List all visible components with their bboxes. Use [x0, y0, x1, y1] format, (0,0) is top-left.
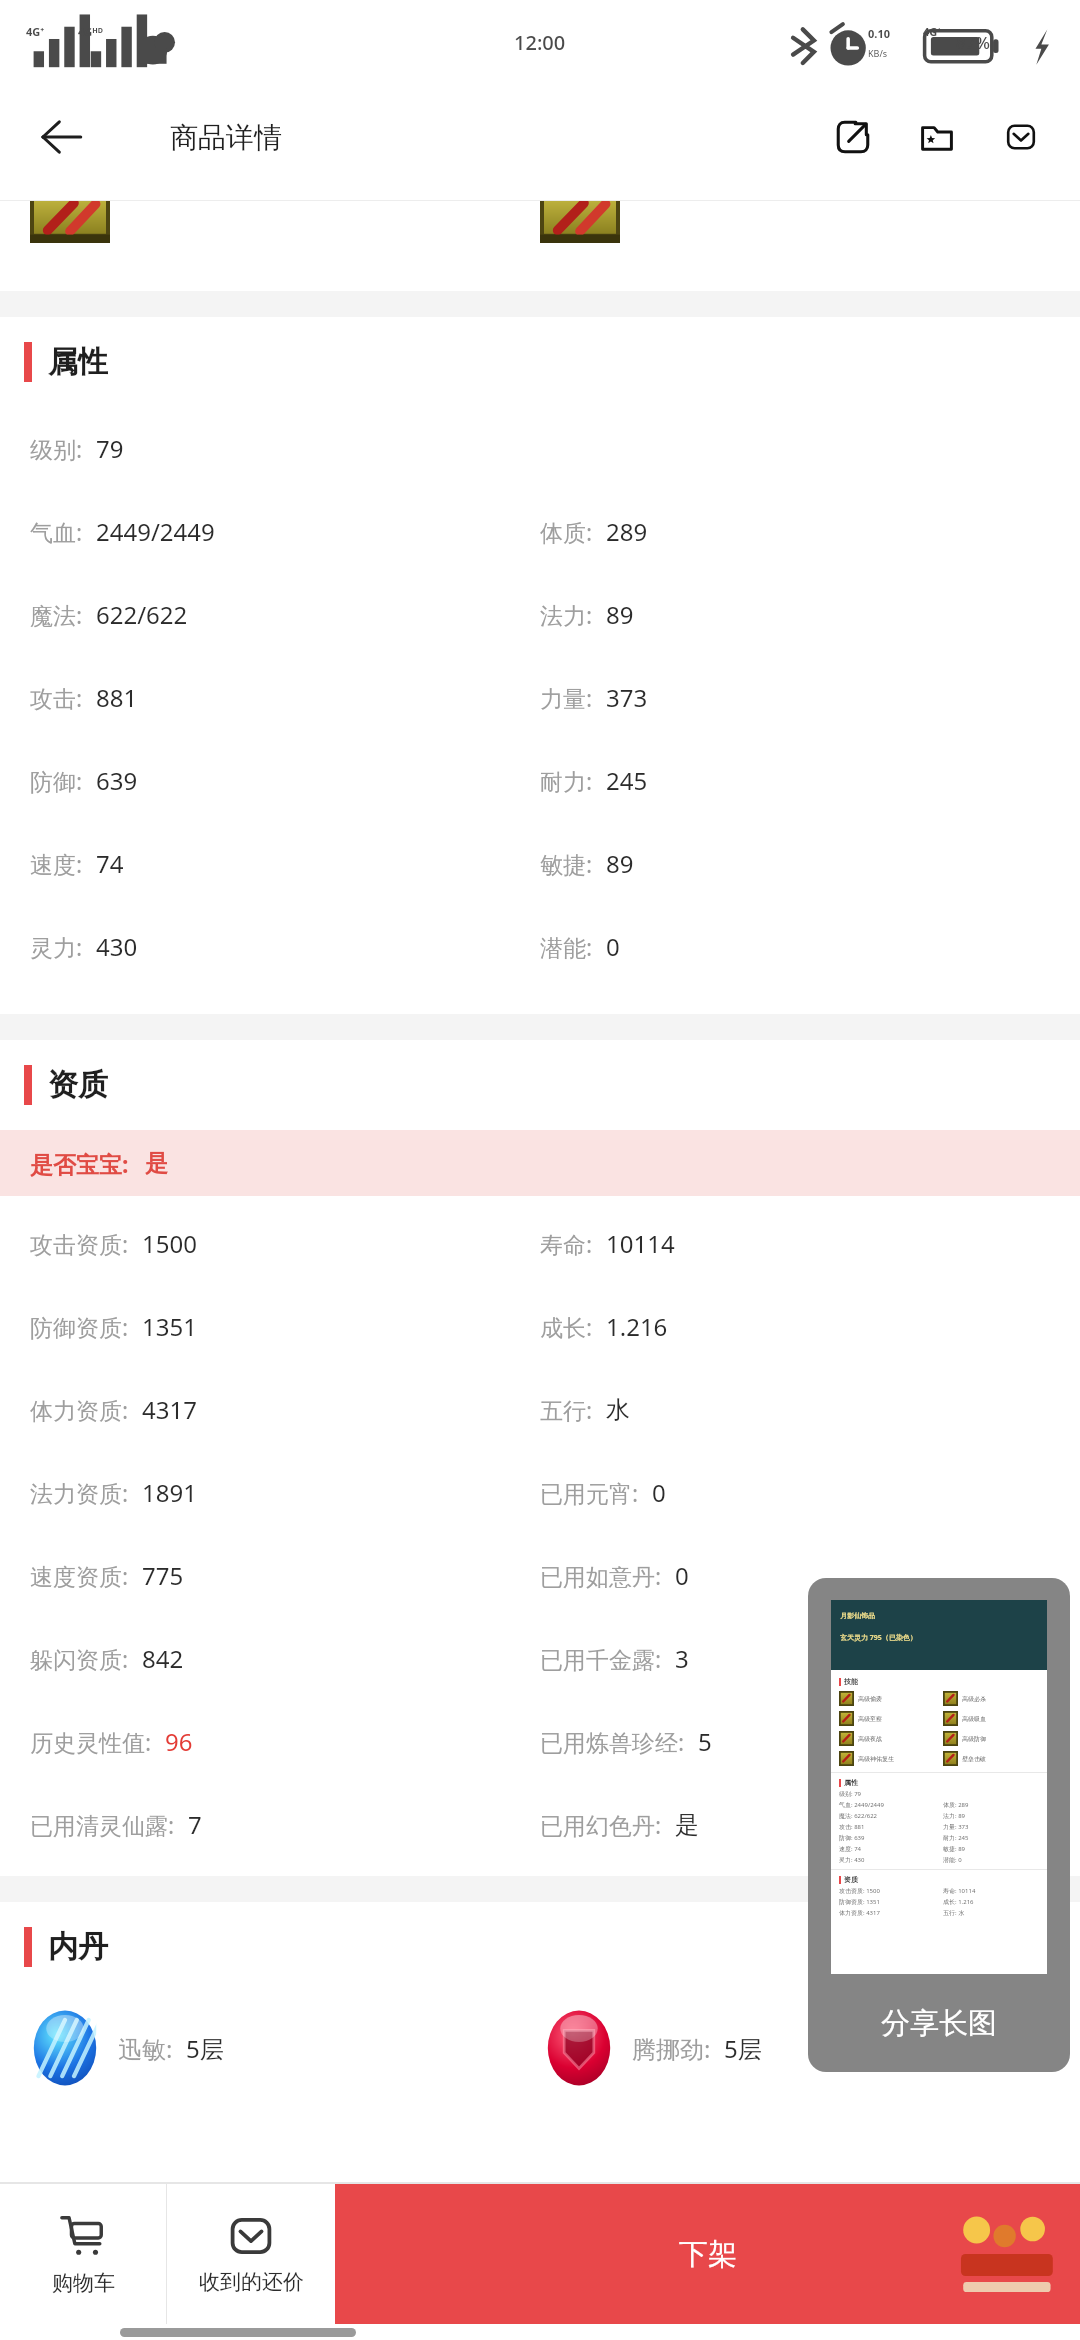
staticText: 79 — [96, 432, 124, 465]
staticText: 购物车 — [52, 2270, 115, 2296]
staticText: 体质: 289 — [943, 1801, 969, 1809]
staticText: 高级必杀 — [962, 1695, 986, 1703]
staticText: 4317 — [142, 1393, 197, 1426]
staticText: 防御资质: 1351 — [839, 1898, 880, 1906]
staticText: 1351 — [142, 1310, 197, 1343]
staticText: 力量: — [540, 682, 593, 713]
staticText: 敏捷: 89 — [943, 1845, 966, 1853]
staticText: 技能 — [844, 1677, 858, 1686]
staticText: 1500 — [142, 1227, 197, 1260]
staticText: 资质 — [48, 1066, 108, 1104]
staticText: 水 — [606, 1395, 630, 1425]
staticText: 法力资质: — [30, 1477, 129, 1508]
staticText: 耐力: 245 — [943, 1834, 969, 1842]
button[interactable]: Messages — [988, 104, 1054, 170]
staticText: 10114 — [606, 1227, 675, 1260]
staticText: 下架 — [679, 2236, 737, 2273]
staticText: 89 — [606, 847, 634, 880]
staticText: 防御资质: — [30, 1311, 129, 1342]
staticText: 373 — [606, 681, 648, 714]
button[interactable]: Share — [820, 104, 886, 170]
staticText: 壁垒击破 — [962, 1755, 986, 1763]
staticText: 耐力: — [540, 765, 593, 796]
staticText: 0 — [675, 1559, 689, 1592]
staticText: 5层 — [724, 2032, 762, 2065]
staticText: 五行: — [540, 1394, 593, 1425]
staticText: 内丹 — [48, 1928, 108, 1966]
staticText: 攻击资质: 1500 — [839, 1887, 880, 1895]
staticText: 1891 — [142, 1476, 197, 1509]
staticText: 成长: — [540, 1311, 593, 1342]
staticText: 高级夜战 — [858, 1735, 882, 1743]
staticText: 已用元宵: — [540, 1477, 639, 1508]
staticText: 玄天灵力 795（已染色） — [840, 1633, 917, 1643]
staticText: 2449/2449 — [96, 515, 215, 548]
staticText: 4G⁺ — [923, 24, 942, 39]
staticText: 级别: 79 — [839, 1790, 862, 1798]
staticText: 842 — [142, 1642, 184, 1675]
staticText: 商品详情 — [170, 120, 282, 155]
staticText: 0 — [606, 930, 620, 963]
staticText: 魔法: 622/622 — [839, 1812, 877, 1820]
staticText: 速度: 74 — [839, 1845, 862, 1853]
staticText: 775 — [142, 1559, 184, 1592]
staticText: 法力: 89 — [943, 1812, 966, 1820]
staticText: 430 — [96, 930, 138, 963]
staticText: 历史灵性值: — [30, 1726, 152, 1757]
staticText: 高级防御 — [962, 1735, 986, 1743]
button[interactable]: 分享长图 — [808, 1578, 1070, 2072]
staticText: 敏捷: — [540, 848, 593, 879]
staticText: 五行: 水 — [943, 1909, 965, 1917]
staticText: 属性 — [844, 1778, 858, 1787]
staticText: 881 — [96, 681, 138, 714]
staticText: 已用千金露: — [540, 1643, 662, 1674]
staticText: 是否宝宝: — [30, 1148, 129, 1179]
staticText: 月影仙饰品 — [840, 1611, 875, 1620]
staticText: 高级神佑复生 — [858, 1755, 894, 1763]
staticText: 资质 — [844, 1875, 858, 1884]
staticText: 气血: 2449/2449 — [839, 1801, 884, 1809]
button[interactable]: 收到的还价 — [167, 2184, 335, 2324]
staticText: 灵力: 430 — [839, 1856, 865, 1864]
staticText: 245 — [606, 764, 648, 797]
staticText: 96 — [165, 1725, 193, 1758]
staticText: 289 — [606, 515, 648, 548]
staticText: 力量: 373 — [943, 1823, 969, 1831]
staticText: 魔法: — [30, 599, 83, 630]
staticText: 是 — [145, 1149, 168, 1178]
staticText: 高级偷袭 — [858, 1695, 882, 1703]
staticText: 0 — [652, 1476, 666, 1509]
staticText: 收到的还价 — [199, 2269, 304, 2295]
staticText: 1.216 — [606, 1310, 668, 1343]
staticText: 速度资质: — [30, 1560, 129, 1591]
staticText: 4Gᴴᴰ — [78, 24, 103, 39]
staticText: 潜能: 0 — [943, 1856, 962, 1864]
button[interactable]: 购物车 — [0, 2184, 166, 2324]
staticText: 防御: 639 — [839, 1834, 865, 1842]
staticText: 0.10 — [868, 26, 890, 41]
staticText: 躲闪资质: — [30, 1643, 129, 1674]
staticText: 5 — [698, 1725, 712, 1758]
staticText: 寿命: — [540, 1228, 593, 1259]
staticText: 已用如意丹: — [540, 1560, 662, 1591]
staticText: 分享长图 — [881, 2005, 997, 2042]
staticText: 5层 — [186, 2032, 224, 2065]
button[interactable]: 下架 — [335, 2184, 1080, 2324]
button[interactable]: Favorites — [904, 104, 970, 170]
staticText: 法力: — [540, 599, 593, 630]
staticText: 腾挪劲: — [632, 2032, 711, 2065]
staticText: 3 — [675, 1642, 689, 1675]
staticText: 速度: — [30, 848, 83, 879]
staticText: 89 — [606, 598, 634, 631]
staticText: 639 — [96, 764, 138, 797]
staticText: 攻击资质: — [30, 1228, 129, 1259]
staticText: 灵力: — [30, 931, 83, 962]
staticText: 已用幻色丹: — [540, 1809, 662, 1840]
staticText: 迅敏: — [118, 2032, 173, 2065]
staticText: 潜能: — [540, 931, 593, 962]
staticText: 74 — [96, 847, 124, 880]
staticText: KB/s — [868, 47, 888, 59]
staticText: 属性 — [48, 343, 108, 381]
button[interactable]: Back — [22, 98, 100, 176]
staticText: 已用炼兽珍经: — [540, 1726, 685, 1757]
